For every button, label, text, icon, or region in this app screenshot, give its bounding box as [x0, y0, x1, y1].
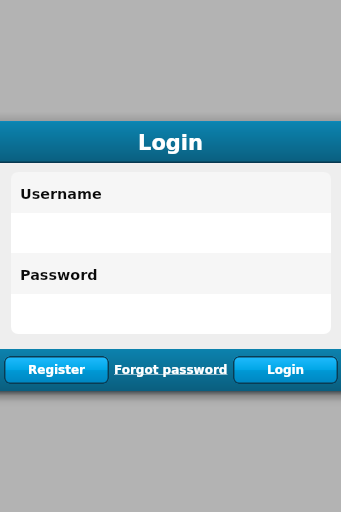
staticText: Login	[138, 131, 203, 155]
staticText: Forgot password	[114, 363, 228, 377]
staticText: Register	[28, 363, 86, 377]
button[interactable]: Password	[11, 253, 331, 294]
button[interactable]: Login	[233, 356, 338, 384]
button[interactable]: Username	[11, 172, 331, 213]
button[interactable]: Forgot password	[109, 349, 233, 391]
button[interactable]: Register	[4, 356, 109, 384]
staticText: Username	[20, 186, 102, 203]
staticText: Password	[20, 267, 98, 284]
staticText: Login	[267, 363, 305, 377]
